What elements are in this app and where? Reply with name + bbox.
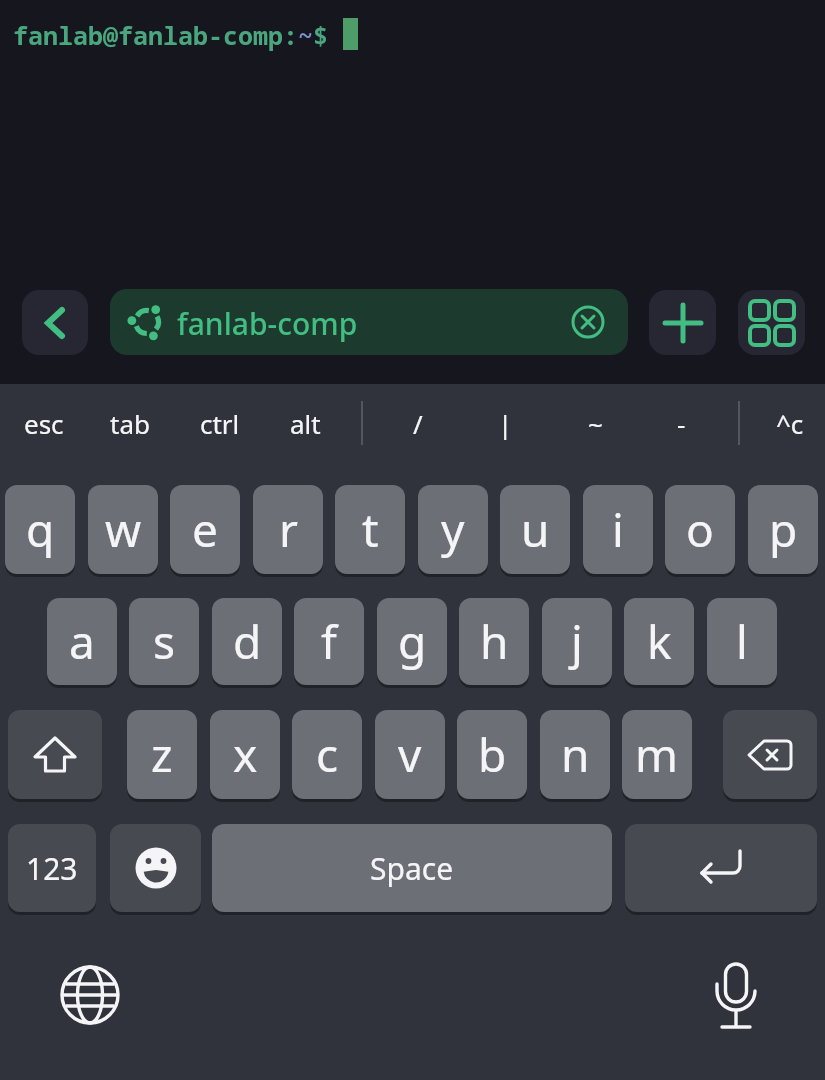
staticText: z	[151, 723, 173, 786]
button[interactable]	[649, 290, 716, 355]
staticText: ctrl	[200, 406, 240, 441]
button[interactable]: /	[378, 396, 458, 450]
button[interactable]: j	[542, 598, 612, 685]
button[interactable]: k	[624, 598, 694, 685]
button[interactable]: e	[170, 485, 240, 574]
staticText: Space	[370, 848, 454, 889]
button[interactable]: p	[748, 485, 818, 574]
staticText: t	[362, 498, 379, 561]
staticText: v	[398, 723, 422, 786]
button[interactable]	[738, 290, 805, 355]
button[interactable]: Space	[212, 824, 612, 912]
button[interactable]: tab	[90, 396, 170, 450]
button[interactable]: i	[583, 485, 653, 574]
button[interactable]: esc	[4, 396, 84, 450]
staticText: i	[612, 498, 624, 561]
button[interactable]: y	[418, 485, 488, 574]
staticText: x	[233, 723, 258, 786]
staticText: u	[521, 498, 550, 561]
button[interactable]: h	[459, 598, 529, 685]
button[interactable]: c	[292, 710, 362, 799]
button[interactable]: x	[210, 710, 280, 799]
button[interactable]: -	[641, 396, 721, 450]
staticText: m	[635, 723, 679, 786]
button[interactable]: 123	[8, 824, 96, 912]
button[interactable]: ^c	[750, 396, 825, 450]
staticText: f	[321, 610, 337, 673]
button[interactable]: ~	[555, 396, 635, 450]
button[interactable]: o	[665, 485, 735, 574]
button[interactable]: u	[500, 485, 570, 574]
staticText: 123	[26, 848, 78, 889]
button[interactable]	[625, 824, 817, 912]
staticText: fanlab@fanlab-comp:~$	[13, 18, 329, 52]
button[interactable]	[22, 290, 88, 355]
button[interactable]: d	[212, 598, 282, 685]
staticText: g	[398, 610, 427, 673]
staticText: r	[279, 498, 298, 561]
button[interactable]: m	[622, 710, 692, 799]
button[interactable]: |	[465, 396, 545, 450]
button[interactable]: w	[88, 485, 158, 574]
staticText: b	[478, 723, 507, 786]
staticText: j	[571, 610, 583, 673]
staticText: y	[441, 498, 465, 561]
staticText: tab	[110, 406, 150, 441]
button[interactable]: alt	[265, 396, 345, 450]
button[interactable]: g	[377, 598, 447, 685]
staticText: h	[480, 610, 509, 673]
button[interactable]: ctrl	[180, 396, 260, 450]
staticText: esc	[24, 406, 64, 441]
staticText: o	[686, 498, 714, 561]
staticText: -	[677, 406, 686, 441]
button[interactable]: v	[375, 710, 445, 799]
staticText: ^c	[776, 406, 804, 441]
staticText: a	[69, 610, 95, 673]
button[interactable]	[707, 958, 765, 1036]
button[interactable]: l	[707, 598, 777, 685]
staticText: w	[105, 498, 142, 561]
button[interactable]: b	[457, 710, 527, 799]
button[interactable]: a	[47, 598, 117, 685]
button[interactable]	[8, 710, 102, 799]
staticText: fanlab-comp	[177, 303, 358, 344]
staticText: d	[233, 610, 262, 673]
button[interactable]: r	[253, 485, 323, 574]
staticText: l	[736, 610, 748, 673]
staticText: k	[647, 610, 672, 673]
button[interactable]	[723, 710, 817, 799]
button[interactable]: f	[294, 598, 364, 685]
staticText: alt	[290, 406, 321, 441]
button[interactable]: t	[335, 485, 405, 574]
button[interactable]: n	[540, 710, 610, 799]
staticText: e	[192, 498, 218, 561]
button[interactable]: s	[129, 598, 199, 685]
staticText: /	[413, 406, 423, 441]
staticText: ~	[588, 406, 603, 441]
staticText: q	[26, 498, 55, 561]
button[interactable]	[110, 824, 201, 912]
staticText: s	[153, 610, 176, 673]
staticText: |	[498, 406, 513, 441]
button[interactable]: z	[127, 710, 197, 799]
button[interactable]: q	[5, 485, 75, 574]
staticText: c	[316, 723, 339, 786]
staticText: p	[769, 498, 798, 561]
button[interactable]	[61, 966, 119, 1024]
button[interactable]: fanlab-comp	[110, 289, 628, 355]
staticText: n	[561, 723, 590, 786]
